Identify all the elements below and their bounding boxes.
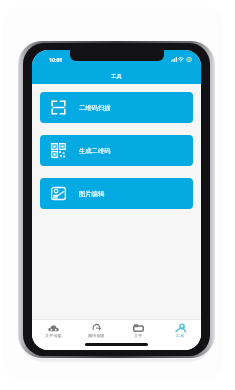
staticText: 10:01 (49, 56, 63, 63)
button[interactable]: 二维码扫描 (40, 92, 193, 123)
staticText: 二维码扫描 (79, 104, 111, 112)
button[interactable]: 生成二维码 (40, 135, 193, 166)
staticText: 网络测速 (88, 333, 105, 338)
staticText: 生成二维码 (79, 147, 111, 155)
staticText: 文件传输 (45, 333, 62, 338)
button[interactable]: 文件传输 (32, 320, 75, 341)
staticText: 文件 (134, 333, 143, 338)
button[interactable]: 网络测速 (75, 320, 117, 341)
button[interactable]: 图片编辑 (40, 178, 193, 209)
staticText: 工具 (176, 333, 185, 338)
staticText: 工具 (111, 73, 123, 80)
button[interactable]: 文件 (117, 320, 159, 341)
button[interactable]: 工具 (159, 320, 201, 341)
staticText: 图片编辑 (79, 190, 105, 198)
